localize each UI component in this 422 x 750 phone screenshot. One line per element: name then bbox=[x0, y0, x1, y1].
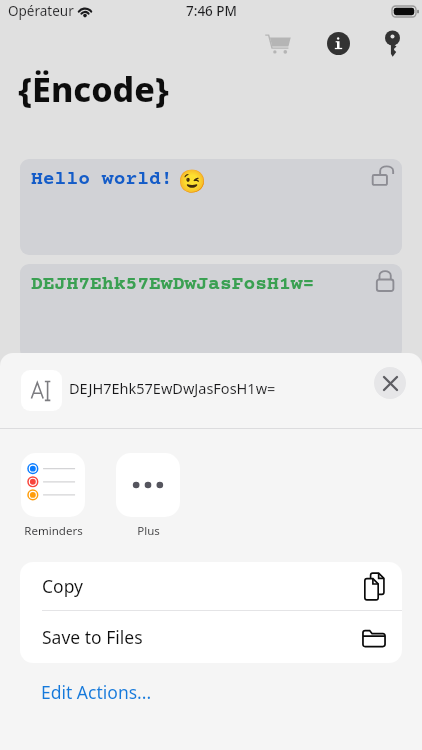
button[interactable]: Info bbox=[320, 25, 356, 61]
button[interactable]: Cart bbox=[260, 25, 296, 61]
staticText: DEJH7Ehk57EwDwJasFosH1w= bbox=[69, 378, 276, 398]
button[interactable]: Hello world! bbox=[20, 159, 402, 255]
staticText: Reminders bbox=[24, 523, 83, 539]
staticText: 😉 bbox=[178, 168, 207, 194]
button[interactable]: Key bbox=[374, 25, 410, 61]
button[interactable]: Close bbox=[374, 367, 406, 399]
staticText: Plus bbox=[137, 523, 160, 539]
button[interactable] bbox=[21, 453, 85, 517]
staticText: Opérateur bbox=[8, 2, 74, 20]
button[interactable]: Edit Actions... bbox=[0, 676, 422, 708]
button[interactable] bbox=[116, 453, 180, 517]
staticText: Save to Files bbox=[42, 625, 143, 649]
button[interactable]: Save to Files bbox=[20, 611, 402, 663]
staticText: Edit Actions... bbox=[41, 680, 152, 704]
staticText: {Ëncode} bbox=[18, 66, 169, 110]
staticText: DEJH7Ehk57EwDwJasFosH1w= bbox=[31, 274, 315, 296]
staticText: Copy bbox=[42, 574, 83, 598]
button[interactable]: Copy bbox=[20, 562, 402, 610]
staticText: Hello world! bbox=[31, 169, 173, 191]
staticText: 7:46 PM bbox=[186, 2, 237, 20]
button[interactable]: DEJH7Ehk57EwDwJasFosH1w= bbox=[20, 264, 402, 359]
